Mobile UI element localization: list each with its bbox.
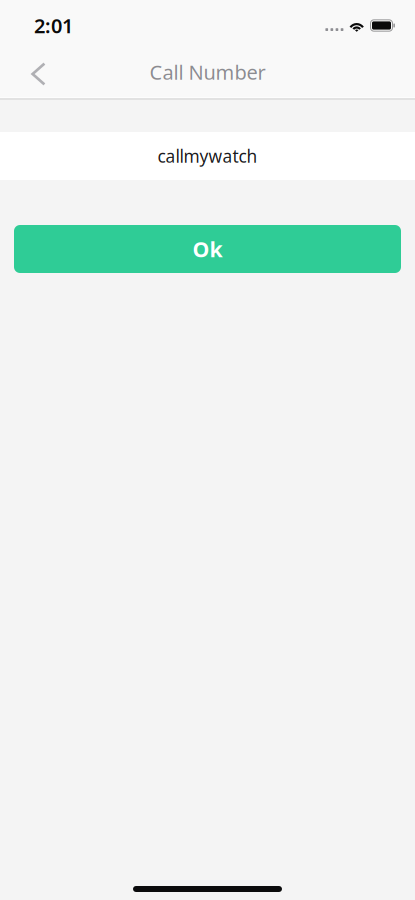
button[interactable]: callmywatch <box>0 132 415 180</box>
button[interactable]: Back <box>0 48 62 96</box>
staticText: Ok <box>192 235 222 263</box>
staticText: callmywatch <box>157 144 257 167</box>
staticText: Call Number <box>149 59 265 85</box>
button[interactable]: Ok <box>14 225 401 273</box>
staticText: 2:01 <box>34 12 73 39</box>
